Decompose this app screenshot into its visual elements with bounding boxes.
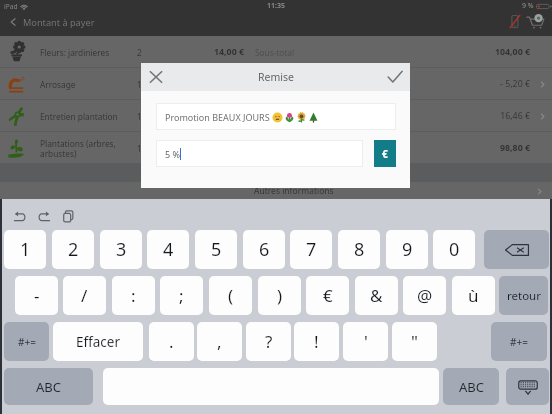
- button[interactable]: 2: [52, 230, 94, 269]
- button[interactable]: 9: [386, 230, 428, 269]
- staticText: ": [411, 330, 418, 353]
- staticText: 9 %: [522, 1, 534, 11]
- staticText: - 5,20 €: [420, 78, 530, 90]
- button[interactable]: Close: [147, 68, 165, 86]
- button[interactable]: Undo: [14, 210, 26, 223]
- staticText: ': [364, 330, 368, 353]
- staticText: 1: [137, 143, 142, 154]
- button[interactable]: Effacer: [53, 322, 143, 361]
- staticText: iPad: [4, 2, 18, 11]
- staticText: -: [34, 284, 40, 307]
- button[interactable]: @: [403, 276, 446, 315]
- staticText: retour: [507, 288, 541, 304]
- button[interactable]: Cart: [526, 13, 545, 30]
- staticText: :: [131, 284, 136, 307]
- staticText: 2: [137, 47, 142, 58]
- button[interactable]: Back: [8, 15, 95, 29]
- button[interactable]: 7: [290, 230, 332, 269]
- staticText: (: [228, 284, 234, 307]
- staticText: 11:35: [267, 1, 285, 11]
- staticText: 9: [402, 237, 413, 262]
- staticText: Effacer: [76, 333, 121, 351]
- button[interactable]: Arrosage: [0, 68, 552, 100]
- staticText: ABC: [36, 378, 61, 396]
- staticText: Plantations (arbres, arbustes): [40, 138, 116, 159]
- staticText: 2: [68, 237, 79, 262]
- staticText: /: [81, 284, 88, 307]
- button[interactable]: Hide keyboard: [506, 368, 549, 405]
- staticText: €: [382, 147, 388, 161]
- staticText: Autres informations: [254, 185, 334, 197]
- staticText: Entretien plantation: [40, 111, 118, 122]
- button[interactable]: Validate: [386, 68, 404, 86]
- staticText: 8: [354, 237, 365, 262]
- button[interactable]: ": [392, 322, 437, 361]
- staticText: 16,46 €: [420, 110, 530, 122]
- staticText: &: [370, 284, 383, 307]
- button[interactable]: !: [294, 322, 339, 361]
- button[interactable]: Delete: [484, 230, 549, 269]
- button[interactable]: ù: [452, 276, 495, 315]
- staticText: 6: [259, 237, 270, 262]
- staticText: 7: [306, 237, 317, 262]
- staticText: ABC: [459, 378, 484, 396]
- staticText: 1: [137, 111, 142, 122]
- button[interactable]: 0: [433, 230, 475, 269]
- staticText: Remise: [258, 70, 294, 84]
- button[interactable]: (: [209, 276, 252, 315]
- button[interactable]: 1: [4, 230, 46, 269]
- staticText: Arrosage: [40, 79, 76, 90]
- staticText: Sous-total: [255, 47, 295, 58]
- button[interactable]: €: [374, 140, 396, 167]
- staticText: 98,80 €: [420, 142, 530, 154]
- button[interactable]: 6: [243, 230, 285, 269]
- staticText: 0: [449, 237, 460, 262]
- button[interactable]: ): [258, 276, 301, 315]
- button[interactable]: .: [149, 322, 194, 361]
- button[interactable]: 5 %: [156, 140, 363, 167]
- staticText: ;: [179, 284, 184, 307]
- staticText: Montant à payer: [23, 16, 95, 29]
- button[interactable]: ;: [160, 276, 203, 315]
- button[interactable]: retour: [499, 276, 548, 315]
- button[interactable]: ,: [197, 322, 242, 361]
- staticText: .: [169, 330, 174, 353]
- button[interactable]: Promotion BEAUX JOURS: [156, 103, 396, 130]
- staticText: ): [277, 284, 283, 307]
- button[interactable]: 5: [195, 230, 237, 269]
- button[interactable]: Fleurs: jardinieres: [0, 36, 552, 68]
- button[interactable]: :: [112, 276, 155, 315]
- staticText: !: [314, 330, 319, 353]
- button[interactable]: &: [355, 276, 398, 315]
- button[interactable]: /: [63, 276, 106, 315]
- staticText: ù: [468, 284, 479, 307]
- staticText: 3: [116, 237, 127, 262]
- staticText: 5 %: [165, 148, 180, 160]
- staticText: @: [417, 284, 433, 307]
- button[interactable]: €: [306, 276, 349, 315]
- button[interactable]: #+=: [491, 322, 547, 361]
- staticText: Fleurs: jardinieres: [40, 47, 110, 58]
- button[interactable]: -: [15, 276, 58, 315]
- button[interactable]: ?: [246, 322, 291, 361]
- button[interactable]: Autres informations: [0, 182, 552, 200]
- button[interactable]: Device disabled: [509, 14, 521, 29]
- button[interactable]: ABC: [443, 368, 499, 405]
- button[interactable]: 3: [100, 230, 142, 269]
- staticText: 4: [163, 237, 174, 262]
- button[interactable]: Plantations (arbres, arbustes): [0, 132, 552, 164]
- button[interactable]: 4: [147, 230, 189, 269]
- staticText: 14,00 €: [170, 46, 244, 58]
- button[interactable]: Redo: [38, 210, 50, 223]
- staticText: ?: [265, 330, 273, 353]
- button[interactable]: Entretien plantation: [0, 100, 552, 132]
- staticText: 104,00 €: [420, 46, 530, 58]
- button[interactable]: Copy: [63, 210, 75, 223]
- button[interactable]: ': [343, 322, 388, 361]
- button[interactable]: 8: [338, 230, 380, 269]
- button[interactable]: #+=: [4, 322, 49, 361]
- staticText: 5: [211, 237, 222, 262]
- button[interactable]: ABC: [4, 368, 93, 405]
